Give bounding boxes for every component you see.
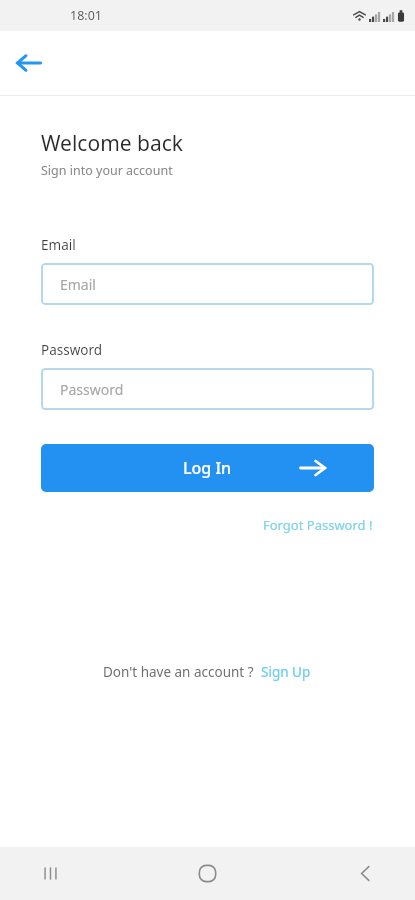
button[interactable]: Log In <box>41 444 374 492</box>
staticText: Log In <box>183 457 232 479</box>
button[interactable]: Sign Up <box>260 661 312 683</box>
staticText: Email <box>41 236 76 254</box>
staticText: Password <box>60 380 124 399</box>
staticText: Don't have an account ? <box>103 663 254 681</box>
button[interactable]: Email <box>41 263 374 305</box>
staticText: Email <box>60 275 96 294</box>
staticText: Forgot Password ! <box>263 516 373 534</box>
staticText: Sign Up <box>261 663 311 681</box>
staticText: Password <box>41 341 103 359</box>
button[interactable]: Recent apps <box>22 847 78 900</box>
button[interactable]: Home <box>179 847 235 900</box>
button[interactable]: Forgot Password ! <box>261 514 375 536</box>
button[interactable]: Password <box>41 368 374 410</box>
staticText: Sign into your account <box>41 162 173 179</box>
staticText: 18:01 <box>70 7 102 24</box>
button[interactable]: Back <box>337 847 393 900</box>
staticText: Welcome back <box>41 129 184 158</box>
button[interactable]: Back <box>8 43 48 83</box>
